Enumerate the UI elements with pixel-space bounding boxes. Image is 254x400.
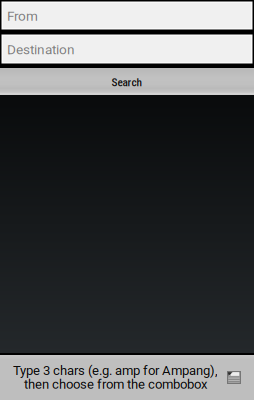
staticText: Search: [111, 76, 142, 89]
button[interactable]: From: [0, 0, 254, 31]
staticText: then choose from the combobox: [24, 377, 207, 392]
staticText: From: [7, 8, 38, 24]
button[interactable]: Destination: [0, 33, 254, 65]
staticText: Destination: [7, 41, 75, 57]
staticText: Type 3 chars (e.g. amp for Ampang),: [13, 363, 218, 378]
button[interactable]: Search: [0, 68, 254, 95]
